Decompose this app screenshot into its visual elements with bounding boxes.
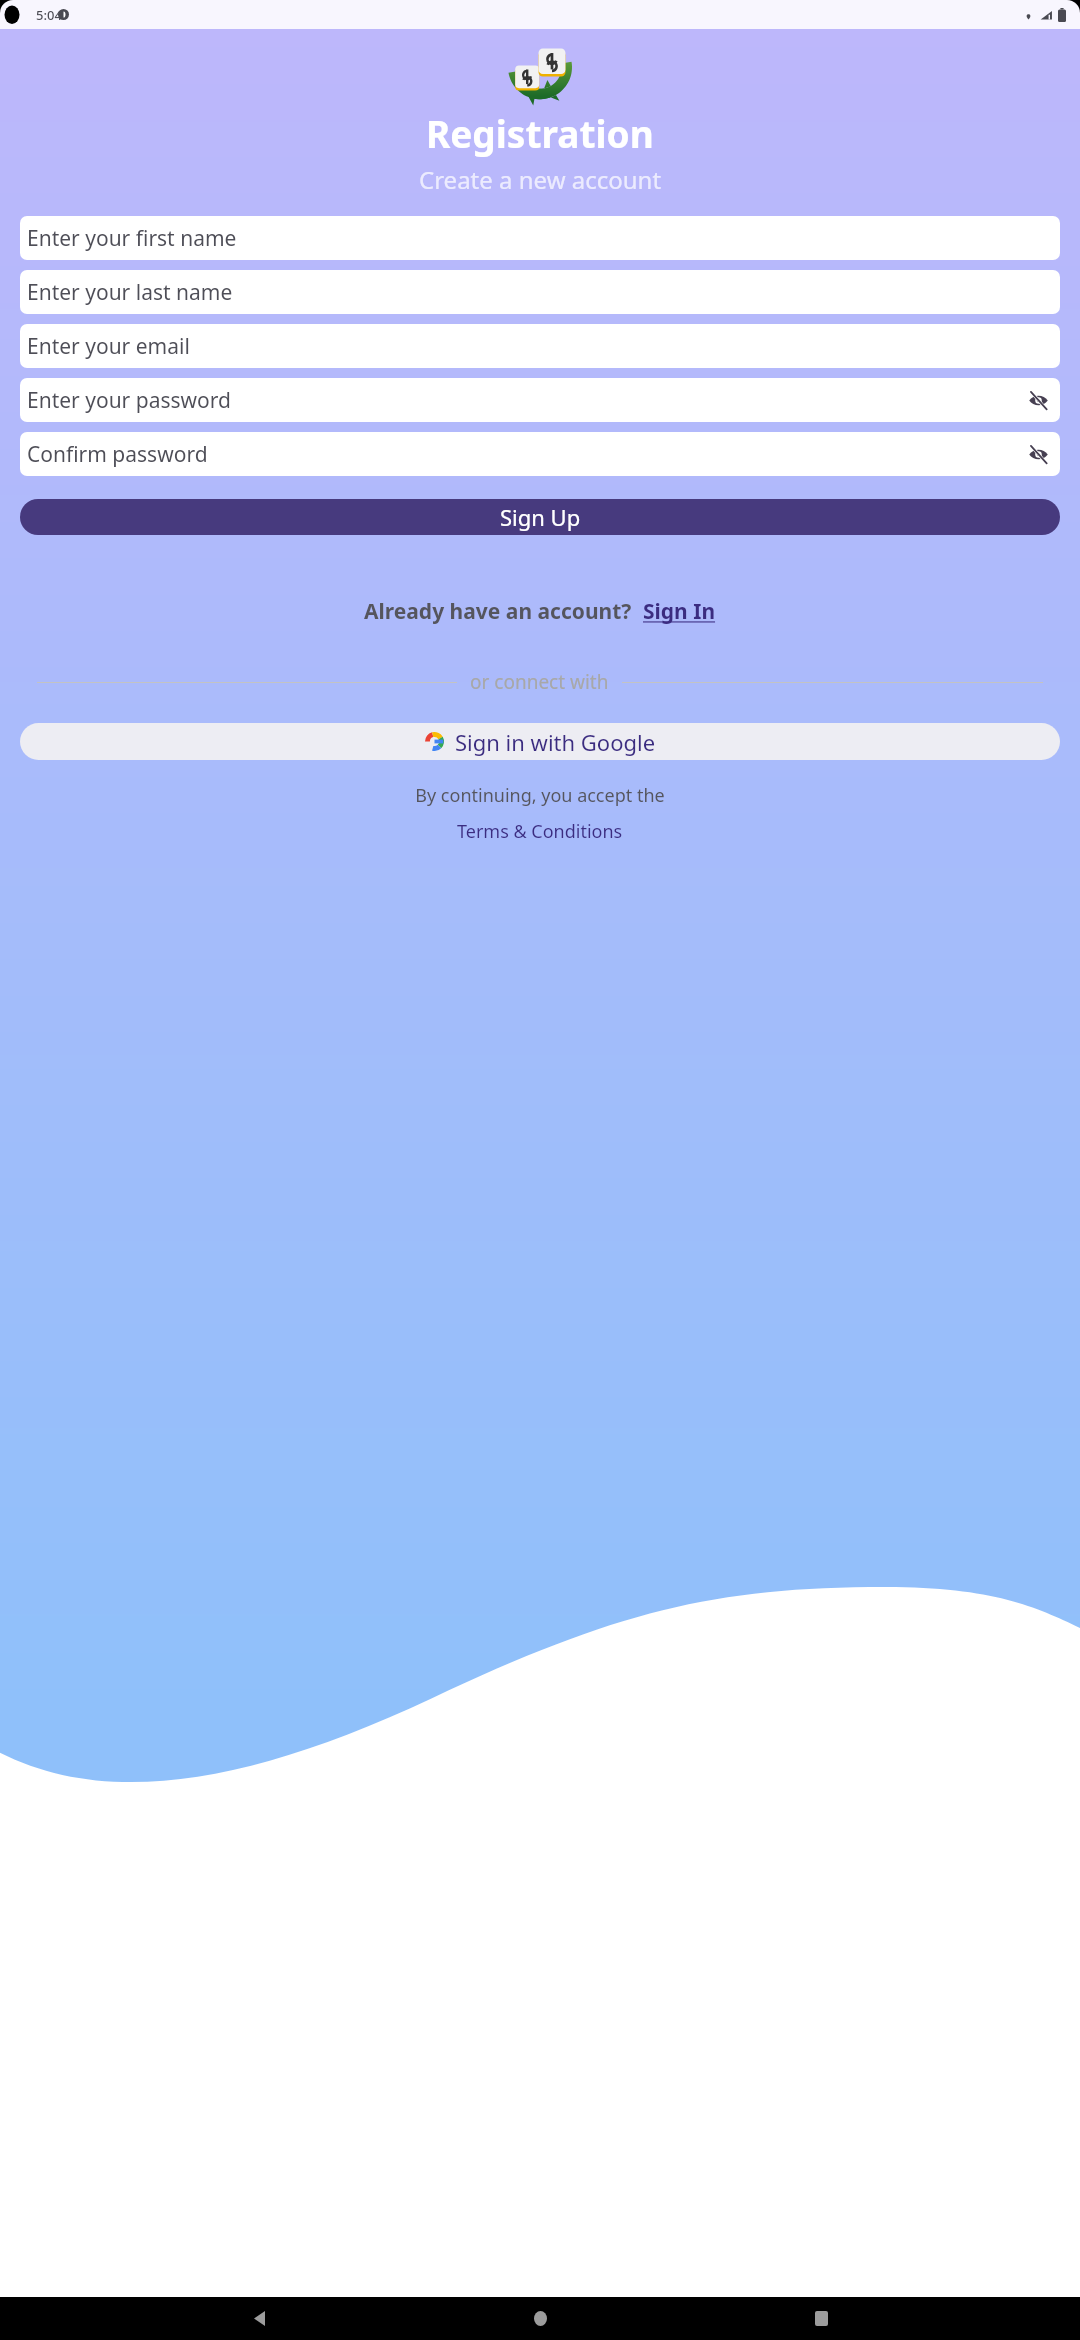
staticText: or connect with	[470, 669, 609, 695]
staticText: Enter your last name	[27, 278, 233, 307]
staticText: Enter your first name	[27, 224, 237, 253]
staticText: Terms & Conditions	[457, 819, 623, 844]
button[interactable]: Sign In	[643, 597, 716, 626]
staticText: Confirm password	[27, 440, 208, 469]
button[interactable]: Enter your email	[20, 324, 1060, 368]
button[interactable]: Confirm password	[20, 432, 1060, 476]
staticText: Enter your email	[27, 332, 190, 361]
button[interactable]: Terms & Conditions	[457, 819, 623, 844]
button[interactable]: Back	[237, 2297, 281, 2340]
staticText: Sign Up	[500, 502, 581, 532]
button[interactable]: Show password	[1026, 388, 1050, 412]
button[interactable]: Enter your last name	[20, 270, 1060, 314]
staticText: Sign in with Google	[455, 727, 656, 757]
button[interactable]: Sign Up	[20, 499, 1060, 535]
staticText: By continuing, you accept the	[415, 783, 665, 808]
staticText: 5:04	[36, 6, 62, 24]
staticText: Sign In	[643, 597, 716, 626]
staticText: Enter your password	[27, 386, 231, 415]
button[interactable]: Enter your first name	[20, 216, 1060, 260]
button[interactable]: Enter your password	[20, 378, 1060, 422]
button[interactable]: Recents	[799, 2297, 843, 2340]
button[interactable]: Home	[518, 2297, 562, 2340]
staticText: Registration	[426, 108, 654, 158]
button[interactable]: Show password	[1026, 442, 1050, 466]
staticText: Already have an account?	[364, 597, 632, 626]
staticText: Create a new account	[419, 163, 662, 196]
button[interactable]: Sign in with Google	[20, 723, 1060, 760]
